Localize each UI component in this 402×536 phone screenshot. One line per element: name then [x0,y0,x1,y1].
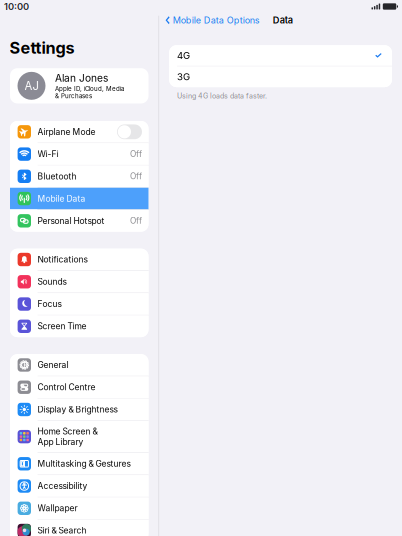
button[interactable]: Bluetooth [10,165,148,187]
button[interactable]: Screen Time [10,315,148,337]
staticText: Mobile Data Options [173,15,260,26]
staticText: General [38,360,69,370]
staticText: Airplane Mode [38,127,96,137]
staticText: Wallpaper [38,503,78,513]
button[interactable]: Display & Brightness [10,399,148,420]
button[interactable]: Mobile Data Options [159,13,264,28]
button[interactable]: Data [264,13,299,28]
staticText: Siri & Search [38,525,87,536]
staticText: 10:00 [4,1,29,12]
button[interactable]: Wallpaper [10,497,148,519]
button[interactable]: General [10,354,148,376]
button[interactable]: Wi-Fi [10,143,148,165]
staticText: Focus [38,299,62,309]
staticText: Sounds [38,277,67,287]
staticText: Screen Time [38,321,87,331]
button[interactable]: Siri & Search [10,520,148,536]
staticText: Settings [9,38,74,58]
button[interactable]: Focus [10,293,148,315]
staticText: Apple ID, iCloud, Media [55,85,124,92]
staticText: 4G [177,50,190,61]
staticText: Mobile Data [38,193,86,204]
staticText: Data [273,15,293,26]
staticText: Off [130,171,142,181]
staticText: Control Centre [38,382,96,392]
staticText: App Library [38,437,84,447]
button[interactable]: Control Centre [10,376,148,398]
staticText: Using 4G loads data faster. [177,92,267,100]
button[interactable]: AJ [10,68,148,103]
staticText: & Purchases [55,92,92,100]
button[interactable]: Sounds [10,271,148,293]
staticText: Notifications [38,254,88,265]
button[interactable]: Multitasking & Gestures [10,453,148,475]
staticText: Personal Hotspot [38,216,105,226]
button[interactable]: Notifications [10,249,148,270]
staticText: 3G [177,71,190,83]
staticText: Wi-Fi [38,149,59,159]
staticText: Multitasking & Gestures [38,459,131,469]
staticText: AJ [24,79,38,93]
button[interactable]: Home Screen & [10,421,148,452]
button[interactable]: Mobile Data [10,188,148,209]
button[interactable]: 4G [169,45,392,66]
button[interactable]: Accessibility [10,475,148,497]
button[interactable]: 3G [169,66,392,87]
staticText: Alan Jones [55,72,108,84]
staticText: Off [130,216,142,226]
button[interactable]: Airplane Mode [10,121,148,143]
button[interactable]: Personal Hotspot [10,210,148,232]
staticText: Accessibility [38,481,88,491]
staticText: Display & Brightness [38,404,118,415]
staticText: Bluetooth [38,171,77,181]
staticText: Off [130,149,142,159]
staticText: Home Screen & [38,426,98,436]
